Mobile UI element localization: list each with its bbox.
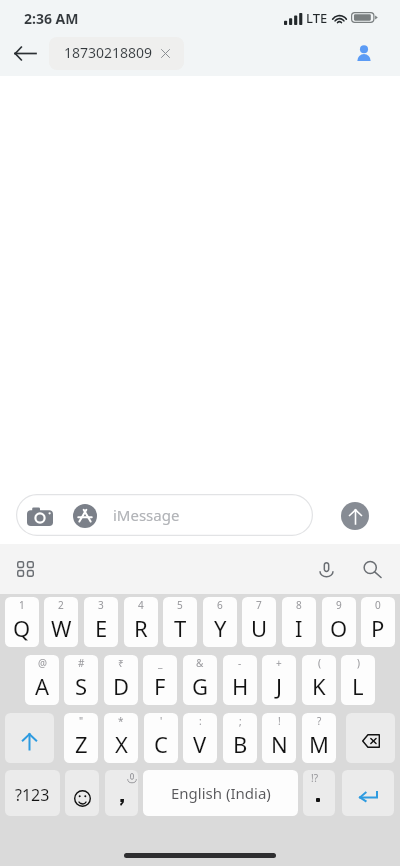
staticText: Y <box>214 613 227 643</box>
button[interactable]: Search <box>355 552 389 586</box>
staticText: Z <box>75 729 88 759</box>
staticText: O <box>330 613 348 643</box>
button[interactable]: 8 <box>282 597 316 647</box>
staticText: ) <box>357 656 360 670</box>
button[interactable]: Back <box>4 32 46 74</box>
button[interactable]: Send <box>341 502 369 530</box>
button[interactable]: : <box>183 713 217 763</box>
staticText: 8 <box>296 598 302 612</box>
staticText: * <box>118 714 124 728</box>
staticText: L <box>352 671 364 701</box>
staticText: & <box>196 656 204 670</box>
button[interactable]: Enter <box>342 770 394 816</box>
staticText: V <box>193 729 207 759</box>
staticText: H <box>232 671 249 701</box>
staticText: S <box>75 671 88 701</box>
staticText: W <box>51 613 72 643</box>
staticText: M <box>309 729 329 759</box>
button[interactable]: English (India) <box>143 770 298 816</box>
staticText: R <box>134 613 148 643</box>
button[interactable]: ? <box>302 713 336 763</box>
staticText: _ <box>158 656 163 670</box>
staticText: LTE <box>306 9 328 27</box>
staticText: A <box>35 671 50 701</box>
button[interactable]: iMessage <box>16 494 313 536</box>
staticText: U <box>251 613 268 643</box>
button[interactable]: 7 <box>242 597 276 647</box>
button[interactable]: 18730218809 <box>49 37 184 70</box>
staticText: C <box>154 729 168 759</box>
button[interactable] <box>105 770 138 816</box>
staticText: @ <box>38 656 47 670</box>
staticText: ( <box>318 656 321 670</box>
staticText: 2:36 AM <box>24 9 79 28</box>
button[interactable]: Backspace <box>346 713 395 763</box>
staticText: 4 <box>138 598 144 612</box>
button[interactable]: 6 <box>203 597 237 647</box>
button[interactable]: - <box>223 655 257 705</box>
staticText: I <box>295 613 303 643</box>
staticText: ?123 <box>15 784 50 806</box>
staticText: X <box>115 729 128 759</box>
staticText: 6 <box>217 598 223 612</box>
staticText: Q <box>13 613 31 643</box>
button[interactable]: Shift <box>5 713 54 763</box>
button[interactable]: ₹ <box>104 655 138 705</box>
button[interactable]: * <box>104 713 138 763</box>
button[interactable]: 4 <box>124 597 158 647</box>
staticText: P <box>371 613 385 643</box>
staticText: J <box>276 671 283 701</box>
button[interactable]: ; <box>223 713 257 763</box>
button[interactable]: Voice input <box>309 552 343 586</box>
staticText: B <box>233 729 248 759</box>
button[interactable]: 9 <box>322 597 356 647</box>
button[interactable]: ' <box>144 713 178 763</box>
staticText: N <box>271 729 288 759</box>
staticText: 1 <box>19 598 25 612</box>
staticText: " <box>79 714 84 728</box>
button[interactable]: ! <box>262 713 296 763</box>
button[interactable]: _ <box>143 655 177 705</box>
staticText: 2 <box>58 598 64 612</box>
button[interactable]: + <box>262 655 296 705</box>
button[interactable]: @ <box>25 655 59 705</box>
button[interactable]: 0 <box>361 597 395 647</box>
button[interactable]: ) <box>341 655 375 705</box>
button[interactable]: 1 <box>5 597 39 647</box>
staticText: 5 <box>177 598 183 612</box>
staticText: E <box>95 613 108 643</box>
staticText: # <box>78 656 85 670</box>
staticText: iMessage <box>113 505 180 525</box>
staticText: F <box>154 671 166 701</box>
staticText: + <box>276 656 282 670</box>
button[interactable]: ( <box>302 655 336 705</box>
button[interactable]: ?123 <box>5 770 60 816</box>
staticText: ; <box>239 714 242 728</box>
button[interactable]: 5 <box>163 597 197 647</box>
staticText: 18730218809 <box>64 43 153 62</box>
button[interactable]: " <box>64 713 98 763</box>
button[interactable]: & <box>183 655 217 705</box>
staticText: ! <box>278 714 281 728</box>
staticText: 7 <box>256 598 262 612</box>
button[interactable]: Keyboard layout <box>8 552 42 586</box>
button[interactable]: 3 <box>84 597 118 647</box>
staticText: ? <box>317 714 322 728</box>
staticText: 9 <box>336 598 342 612</box>
staticText: English (India) <box>171 783 271 803</box>
staticText: !? <box>311 771 319 785</box>
button[interactable]: !? <box>303 770 335 816</box>
button[interactable]: 2 <box>44 597 78 647</box>
staticText: ₹ <box>118 656 124 670</box>
button[interactable]: Emoji <box>65 770 99 816</box>
staticText: T <box>174 613 187 643</box>
button[interactable]: # <box>64 655 98 705</box>
staticText: D <box>113 671 130 701</box>
button[interactable]: Contact info <box>343 32 385 74</box>
staticText: ' <box>160 714 163 728</box>
staticText: G <box>192 671 209 701</box>
staticText: - <box>238 656 242 670</box>
staticText: : <box>199 714 202 728</box>
staticText: 3 <box>98 598 104 612</box>
staticText: 0 <box>375 598 381 612</box>
